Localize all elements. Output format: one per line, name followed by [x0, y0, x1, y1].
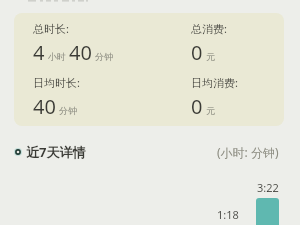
staticText: 0 [191, 93, 203, 120]
staticText: 40 [33, 93, 56, 120]
other: Section marker [14, 148, 22, 156]
staticText: 日均时长: [33, 75, 80, 90]
staticText: 总消费: [191, 21, 227, 36]
staticText: 40 [69, 39, 92, 66]
staticText: 元 [206, 105, 215, 116]
staticText: (小时: 分钟) [217, 144, 279, 160]
staticText: 元 [206, 51, 215, 62]
staticText: 1:18 [217, 207, 239, 222]
staticText: 总时长: [33, 21, 69, 36]
staticText: 近7天详情 [26, 143, 86, 161]
staticText: 分钟 [59, 105, 77, 116]
staticText: 小时 [48, 51, 66, 62]
staticText: 日均消费: [191, 75, 238, 90]
staticText: 0 [191, 39, 203, 66]
button[interactable]: Today 3 hours 22 minutes [256, 198, 279, 225]
button[interactable]: 总时长: [14, 13, 284, 126]
staticText: 4 [33, 39, 45, 66]
staticText: 3:22 [257, 180, 279, 195]
button[interactable]: Section marker [0, 142, 300, 162]
staticText: 分钟 [95, 51, 113, 62]
